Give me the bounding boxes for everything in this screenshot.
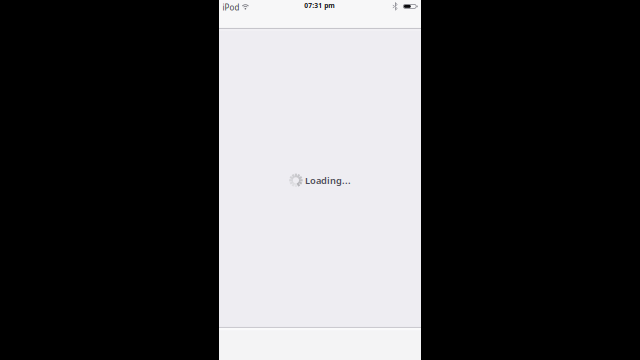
staticText: Loading... (305, 174, 351, 186)
button[interactable]: Loading... (289, 173, 351, 187)
staticText: iPod (222, 2, 239, 13)
staticText: 07:31 pm (304, 1, 335, 10)
button[interactable]: Toolbar (219, 327, 421, 360)
